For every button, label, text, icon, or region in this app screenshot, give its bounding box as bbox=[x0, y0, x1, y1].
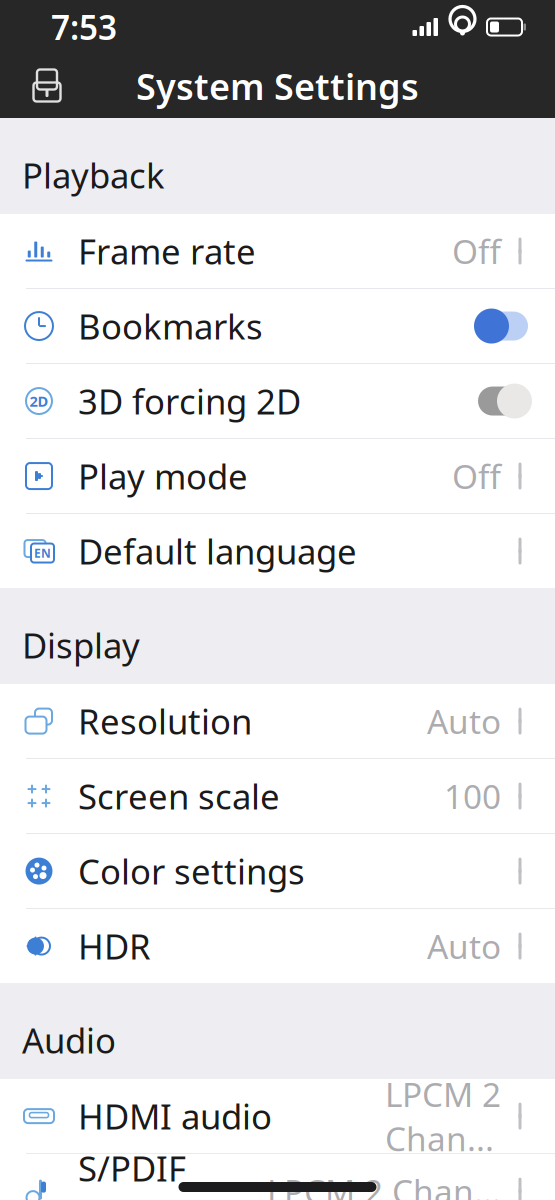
staticText: Resolution bbox=[78, 698, 252, 744]
staticText: 3D forcing 2D bbox=[78, 378, 301, 424]
staticText: Display bbox=[22, 622, 140, 668]
button[interactable]: Play mode bbox=[0, 439, 555, 513]
staticText: HDMI audio bbox=[78, 1093, 272, 1139]
button[interactable]: Color settings bbox=[0, 834, 555, 908]
staticText: Default language bbox=[78, 528, 357, 574]
staticText: Off bbox=[452, 454, 501, 498]
staticText: Off bbox=[452, 229, 501, 273]
staticText: LPCM 2 Chan... bbox=[267, 1169, 501, 1200]
staticText: Audio bbox=[22, 1017, 116, 1063]
staticText: EN bbox=[34, 545, 51, 561]
button[interactable]: Frame rate bbox=[0, 214, 555, 288]
staticText: Frame rate bbox=[78, 228, 256, 274]
button[interactable]: S/PDIF audio bbox=[0, 1154, 555, 1200]
staticText: Auto bbox=[427, 699, 501, 743]
staticText: Bookmarks bbox=[78, 303, 263, 349]
staticText: Color settings bbox=[78, 848, 305, 894]
staticText: 100 bbox=[444, 774, 501, 818]
staticText: HDR bbox=[78, 923, 151, 969]
staticText: 7:53 bbox=[51, 5, 117, 49]
staticText: Playback bbox=[22, 152, 165, 198]
staticText: Auto bbox=[427, 924, 501, 968]
button[interactable]: Resolution bbox=[0, 684, 555, 758]
button[interactable]: Home bbox=[15, 56, 79, 116]
staticText: System Settings bbox=[136, 62, 419, 110]
button[interactable]: EN bbox=[0, 514, 555, 588]
staticText: S/PDIF audio bbox=[78, 1145, 186, 1200]
button[interactable]: HDR bbox=[0, 909, 555, 983]
staticText: Play mode bbox=[78, 453, 248, 499]
staticText: Screen scale bbox=[78, 773, 280, 819]
button[interactable]: Screen scale bbox=[0, 759, 555, 833]
button[interactable]: HDMI audio bbox=[0, 1079, 555, 1153]
staticText: LPCM 2 Chan... bbox=[385, 1072, 501, 1160]
staticText: 2D bbox=[29, 391, 48, 411]
button[interactable]: Bookmarks bbox=[0, 289, 555, 363]
button[interactable]: 2D bbox=[0, 364, 555, 438]
